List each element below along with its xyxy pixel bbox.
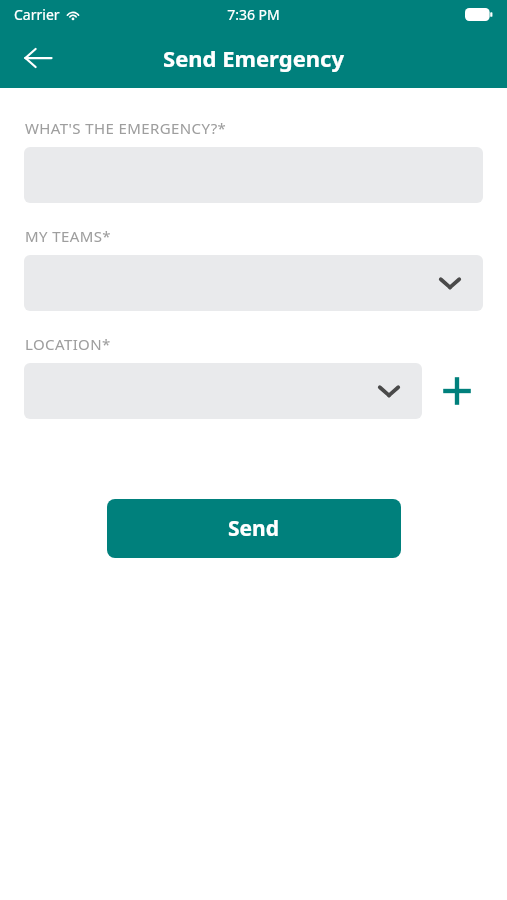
button[interactable]: My teams dropdown bbox=[24, 255, 483, 311]
staticText: Send Emergency bbox=[163, 43, 344, 73]
button[interactable]: Back bbox=[12, 32, 64, 84]
button[interactable]: Add location bbox=[431, 365, 483, 417]
staticText: 7:36 PM bbox=[227, 5, 280, 24]
button[interactable]: Location dropdown bbox=[24, 363, 422, 419]
button[interactable]: Send bbox=[107, 499, 401, 558]
staticText: WHAT'S THE EMERGENCY?* bbox=[25, 118, 227, 138]
staticText: Carrier bbox=[14, 5, 60, 24]
staticText: MY TEAMS* bbox=[25, 226, 111, 246]
staticText: LOCATION* bbox=[25, 334, 111, 354]
staticText: Send bbox=[228, 514, 280, 543]
